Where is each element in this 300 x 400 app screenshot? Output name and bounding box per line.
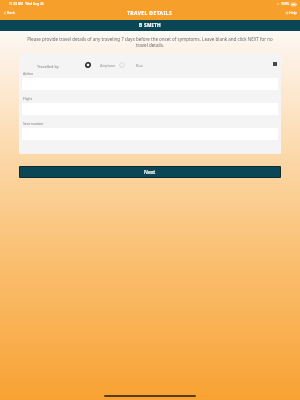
staticText: 11:23 AM Wed Aug 26: [9, 2, 44, 6]
button[interactable]: Next: [20, 167, 280, 177]
button[interactable]: Menu: [271, 60, 278, 67]
staticText: Airline: [23, 71, 34, 76]
staticText: Back: [7, 10, 15, 15]
staticText: B SMITH: [139, 22, 162, 29]
staticText: Bus: [136, 63, 143, 68]
staticText: 100%: [281, 2, 290, 6]
button[interactable]: Back: [2, 9, 16, 16]
staticText: Airplane: [100, 63, 116, 68]
staticText: Please provide travel details of any tra…: [22, 36, 278, 48]
staticText: Seat number: [23, 121, 44, 126]
button[interactable]: Airplane: [85, 62, 116, 68]
staticText: Travelled by: [37, 64, 59, 69]
staticText: Flight: [23, 96, 32, 101]
staticText: Next: [144, 169, 156, 176]
staticText: TRAVEL DETAILS: [127, 10, 173, 17]
staticText: Help: [289, 10, 297, 15]
button[interactable]: Help: [284, 9, 298, 16]
button[interactable]: Bus: [119, 62, 143, 68]
